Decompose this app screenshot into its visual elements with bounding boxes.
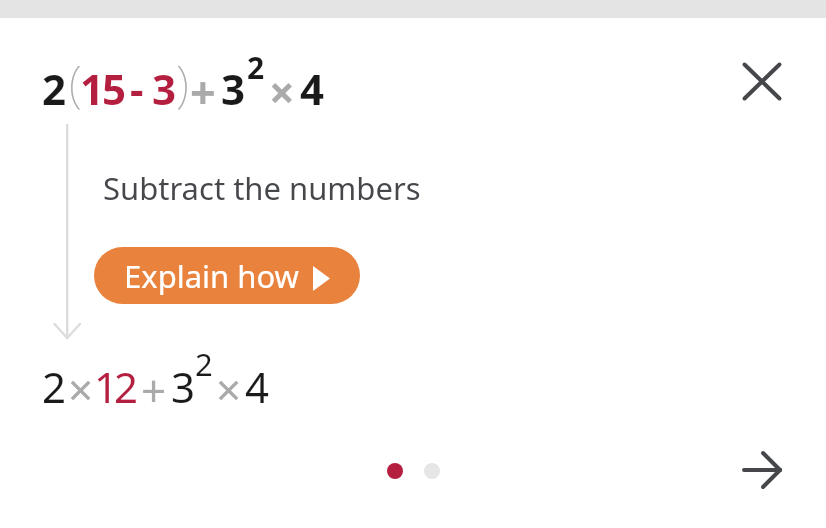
staticText: × xyxy=(216,359,242,419)
staticText: 4 xyxy=(300,60,325,117)
staticText: 2 xyxy=(42,60,67,117)
staticText: 3 xyxy=(152,60,177,117)
button[interactable]: Step 2 of 2 xyxy=(424,463,440,479)
staticText: + xyxy=(190,61,216,122)
staticText: 3 xyxy=(171,358,196,415)
button[interactable]: Step 1 of 2, selected xyxy=(387,463,403,479)
staticText: 2 xyxy=(114,358,139,415)
staticText: ) xyxy=(176,49,189,117)
button[interactable]: Close xyxy=(732,52,792,112)
staticText: 1 xyxy=(80,60,105,117)
button[interactable]: 2 times open paren 15 minus 3 close pare… xyxy=(42,48,68,116)
staticText: - xyxy=(130,60,144,117)
staticText: 5 xyxy=(102,60,127,117)
staticText: 4 xyxy=(245,358,270,415)
staticText: ( xyxy=(69,49,82,117)
staticText: 3 xyxy=(221,60,246,117)
staticText: × xyxy=(269,61,295,122)
staticText: Explain how xyxy=(124,255,299,297)
staticText: × xyxy=(68,359,94,419)
button[interactable]: Explain how xyxy=(94,247,360,304)
staticText: Subtract the numbers xyxy=(103,167,421,209)
staticText: 2 xyxy=(195,343,213,385)
staticText: 1 xyxy=(94,358,119,415)
staticText: + xyxy=(141,360,167,420)
button[interactable]: 2 times 12 plus 3 squared times 4 xyxy=(40,346,66,406)
button[interactable]: Next step xyxy=(732,440,792,500)
staticText: 2 xyxy=(247,47,265,88)
staticText: 2 xyxy=(42,358,67,415)
